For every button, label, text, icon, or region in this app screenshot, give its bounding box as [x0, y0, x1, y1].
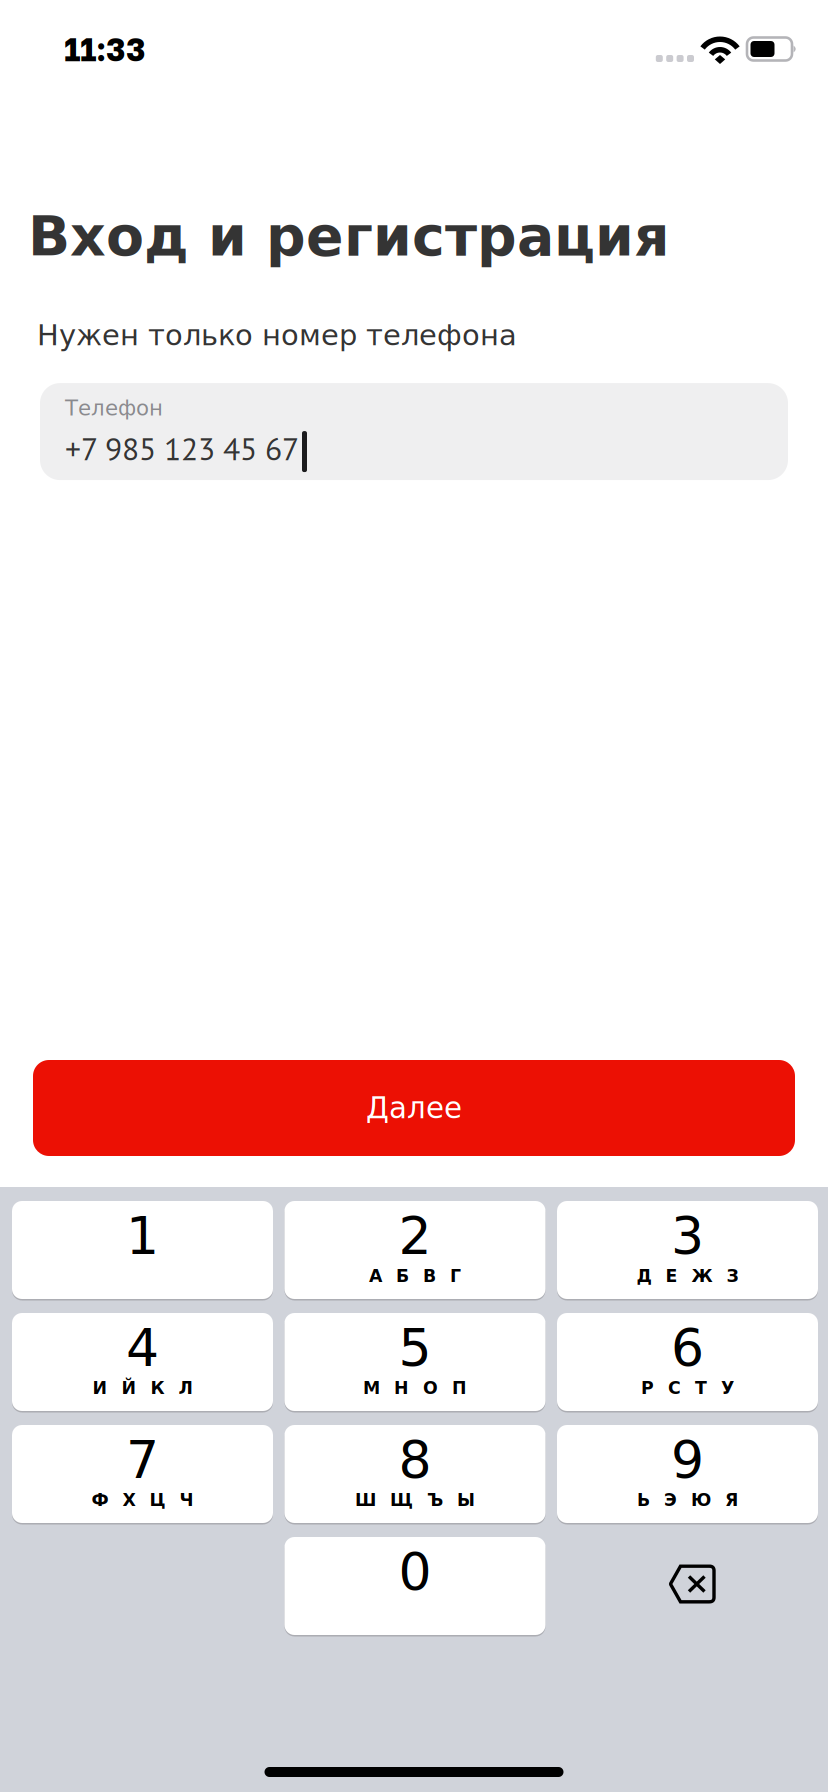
staticText: 6: [671, 1318, 704, 1378]
button[interactable]: 7: [12, 1425, 273, 1523]
staticText: З: [726, 1266, 738, 1286]
staticText: И: [92, 1378, 107, 1398]
staticText: Й: [121, 1378, 136, 1398]
staticText: 9: [671, 1430, 704, 1490]
staticText: 5: [398, 1318, 431, 1378]
button[interactable]: 6: [557, 1313, 818, 1411]
staticText: Я: [725, 1490, 738, 1510]
staticText: Ю: [691, 1490, 711, 1510]
button[interactable]: Delete: [557, 1537, 818, 1635]
staticText: Д: [636, 1266, 651, 1286]
staticText: 2: [398, 1206, 431, 1266]
staticText: У: [721, 1378, 734, 1398]
staticText: Ф: [91, 1490, 108, 1510]
staticText: Вход и регистрация: [28, 204, 670, 268]
staticText: Нужен только номер телефона: [37, 318, 517, 352]
staticText: 11:33: [64, 30, 146, 68]
staticText: Г: [450, 1266, 461, 1286]
button[interactable]: 5: [284, 1313, 545, 1411]
staticText: Ъ: [427, 1490, 443, 1510]
staticText: М: [363, 1378, 380, 1398]
button[interactable]: Телефон: [40, 383, 788, 480]
staticText: Ч: [179, 1490, 193, 1510]
staticText: Ж: [691, 1266, 712, 1286]
staticText: 1: [126, 1206, 159, 1266]
staticText: Телефон: [65, 396, 163, 420]
staticText: Л: [178, 1378, 192, 1398]
staticText: В: [423, 1266, 436, 1286]
staticText: О: [423, 1378, 438, 1398]
staticText: 8: [398, 1430, 431, 1490]
button[interactable]: 9: [557, 1425, 818, 1523]
staticText: 7: [126, 1430, 159, 1490]
staticText: Р: [641, 1378, 654, 1398]
staticText: Е: [665, 1266, 677, 1286]
staticText: А: [369, 1266, 382, 1286]
button[interactable]: 4: [12, 1313, 273, 1411]
button[interactable]: 1: [12, 1201, 273, 1299]
staticText: Ы: [457, 1490, 475, 1510]
button[interactable]: Далее: [33, 1060, 795, 1156]
button[interactable]: 0: [284, 1537, 545, 1635]
staticText: 0: [398, 1542, 431, 1602]
staticText: Щ: [390, 1490, 413, 1510]
staticText: Х: [122, 1490, 135, 1510]
button[interactable]: 8: [284, 1425, 545, 1523]
staticText: +7 985 123 45 67: [65, 428, 299, 469]
staticText: Ц: [149, 1490, 165, 1510]
button[interactable]: 2: [284, 1201, 545, 1299]
staticText: Ь: [637, 1490, 650, 1510]
staticText: Э: [664, 1490, 677, 1510]
staticText: Далее: [366, 1091, 462, 1125]
staticText: К: [150, 1378, 164, 1398]
staticText: Ш: [355, 1490, 376, 1510]
staticText: 4: [126, 1318, 159, 1378]
staticText: С: [668, 1378, 681, 1398]
staticText: Н: [394, 1378, 409, 1398]
staticText: Т: [695, 1378, 707, 1398]
button[interactable]: 3: [557, 1201, 818, 1299]
staticText: Б: [396, 1266, 409, 1286]
staticText: П: [452, 1378, 467, 1398]
staticText: 3: [671, 1206, 704, 1266]
